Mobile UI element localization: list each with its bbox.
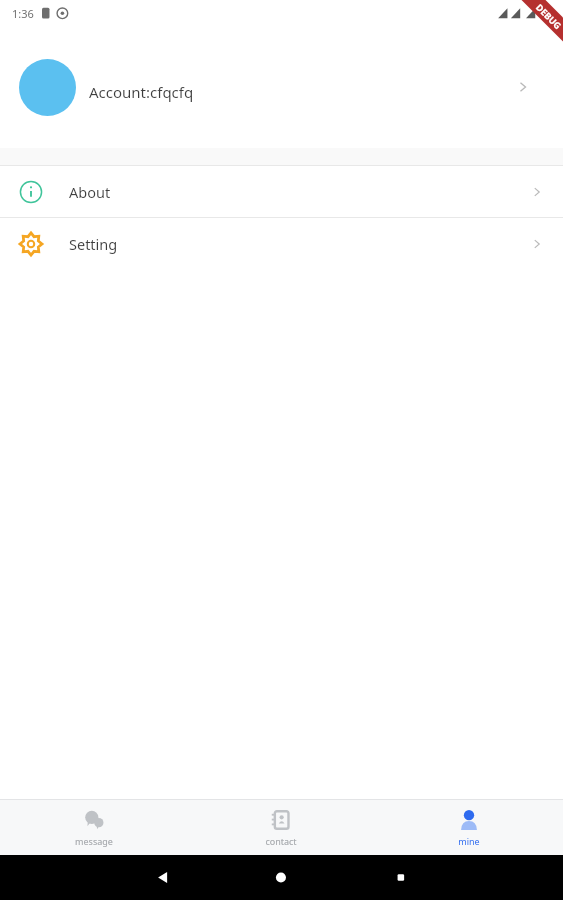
staticText: contact bbox=[265, 835, 297, 847]
button[interactable]: contact bbox=[187, 800, 375, 855]
staticText: message bbox=[75, 835, 113, 847]
staticText: Account:cfqcfq bbox=[89, 82, 194, 102]
other: Setting bbox=[19, 232, 43, 256]
button[interactable]: Account:cfqcfq bbox=[0, 26, 563, 148]
button[interactable]: mine bbox=[375, 800, 563, 855]
button[interactable]: Setting bbox=[0, 218, 563, 269]
staticText: 1:36 bbox=[12, 6, 34, 21]
other: About bbox=[19, 180, 43, 204]
staticText: About bbox=[69, 182, 111, 202]
staticText: DEBUG bbox=[534, 1, 563, 31]
staticText: mine bbox=[458, 835, 480, 847]
button[interactable]: About bbox=[0, 166, 563, 217]
button[interactable]: message bbox=[0, 800, 187, 855]
staticText: Setting bbox=[69, 234, 118, 254]
